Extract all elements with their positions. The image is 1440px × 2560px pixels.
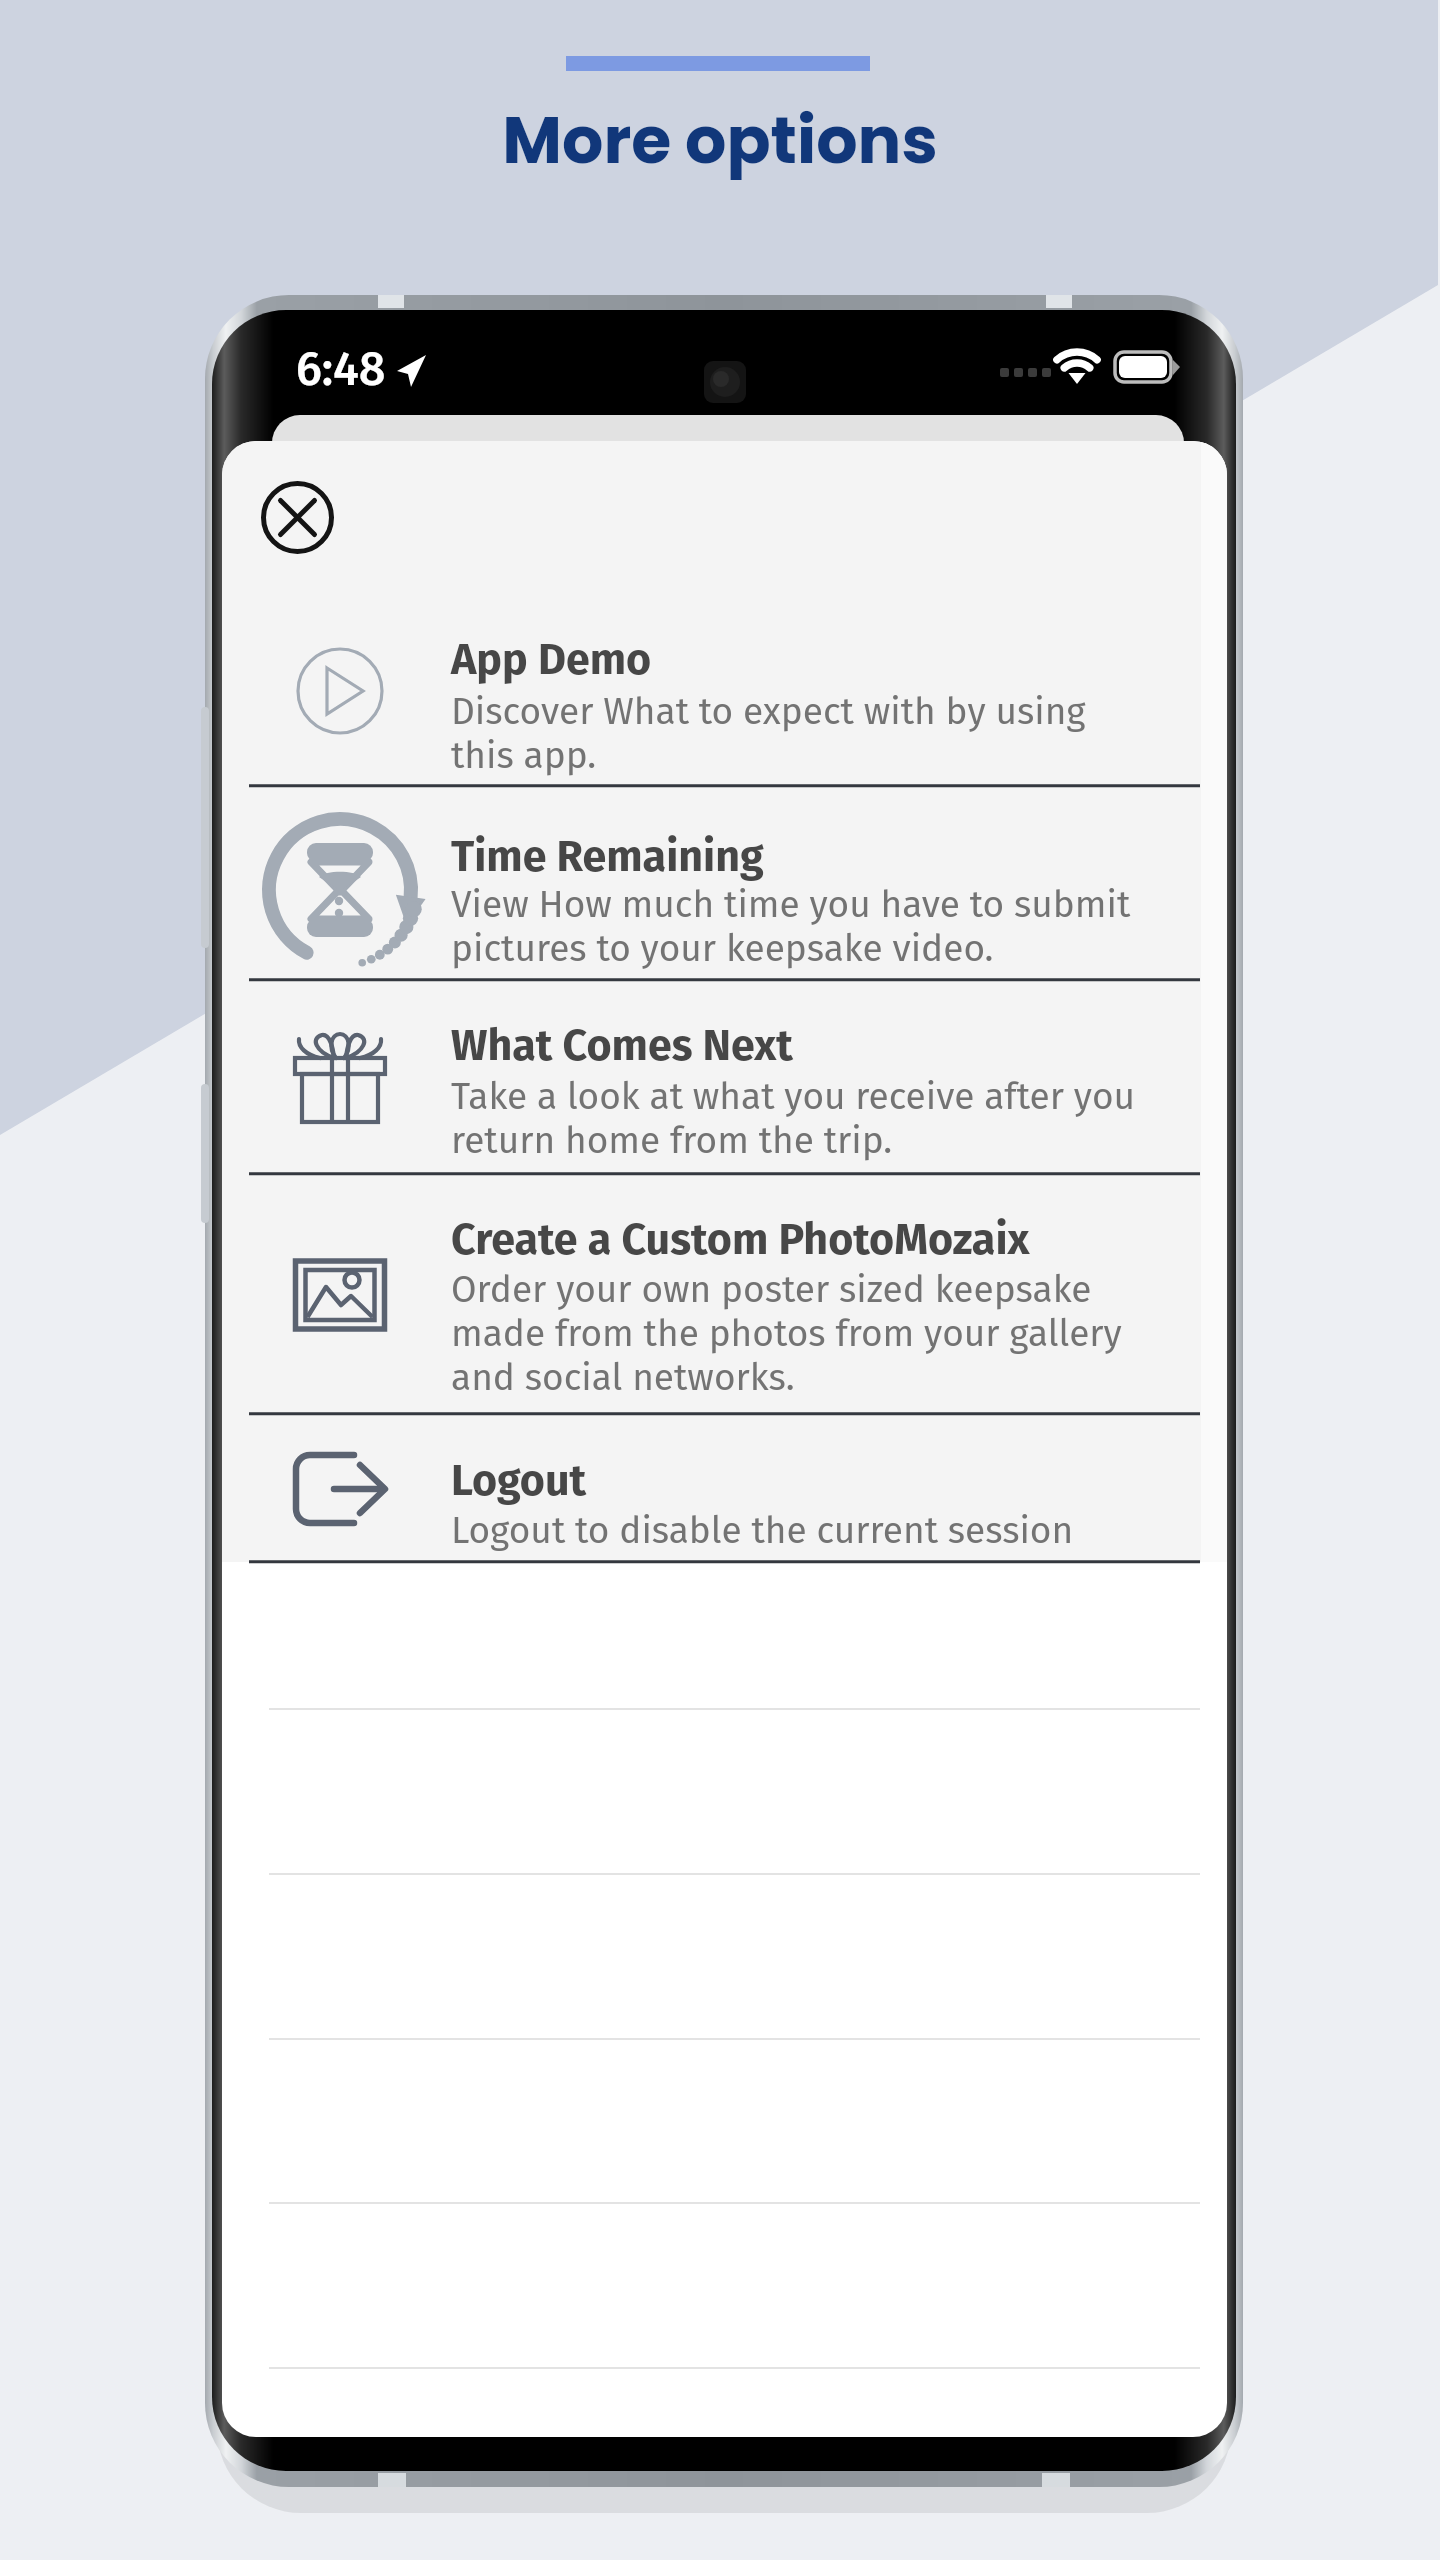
button[interactable]: Time Remaining	[222, 786, 1227, 980]
staticText: App Demo	[451, 634, 652, 686]
staticText: More options	[0, 95, 1440, 186]
button[interactable]: What Comes Next	[222, 980, 1227, 1174]
staticText: made from the photos from your gallery	[451, 1311, 1122, 1355]
staticText: and social networks.	[451, 1355, 795, 1399]
button[interactable]: Logout	[222, 1414, 1227, 1562]
staticText: What Comes Next	[451, 1020, 793, 1072]
staticText: Create a Custom PhotoMozaix	[451, 1214, 1030, 1266]
staticText: pictures to your keepsake video.	[451, 926, 994, 970]
staticText: return home from the trip.	[451, 1118, 893, 1162]
button[interactable]: App Demo	[222, 441, 1227, 786]
staticText: Logout	[451, 1455, 587, 1507]
staticText: Take a look at what you receive after yo…	[451, 1074, 1136, 1118]
staticText: Discover What to expect with by using	[451, 689, 1086, 733]
staticText: View How much time you have to submit	[451, 882, 1131, 926]
staticText: this app.	[451, 733, 597, 777]
staticText: Logout to disable the current session	[451, 1508, 1074, 1552]
staticText: 6:48	[296, 341, 386, 397]
staticText: Order your own poster sized keepsake	[451, 1267, 1092, 1311]
staticText: Time Remaining	[451, 831, 764, 883]
button[interactable]: Create a Custom PhotoMozaix	[222, 1174, 1227, 1414]
button[interactable]: Close	[261, 481, 334, 554]
